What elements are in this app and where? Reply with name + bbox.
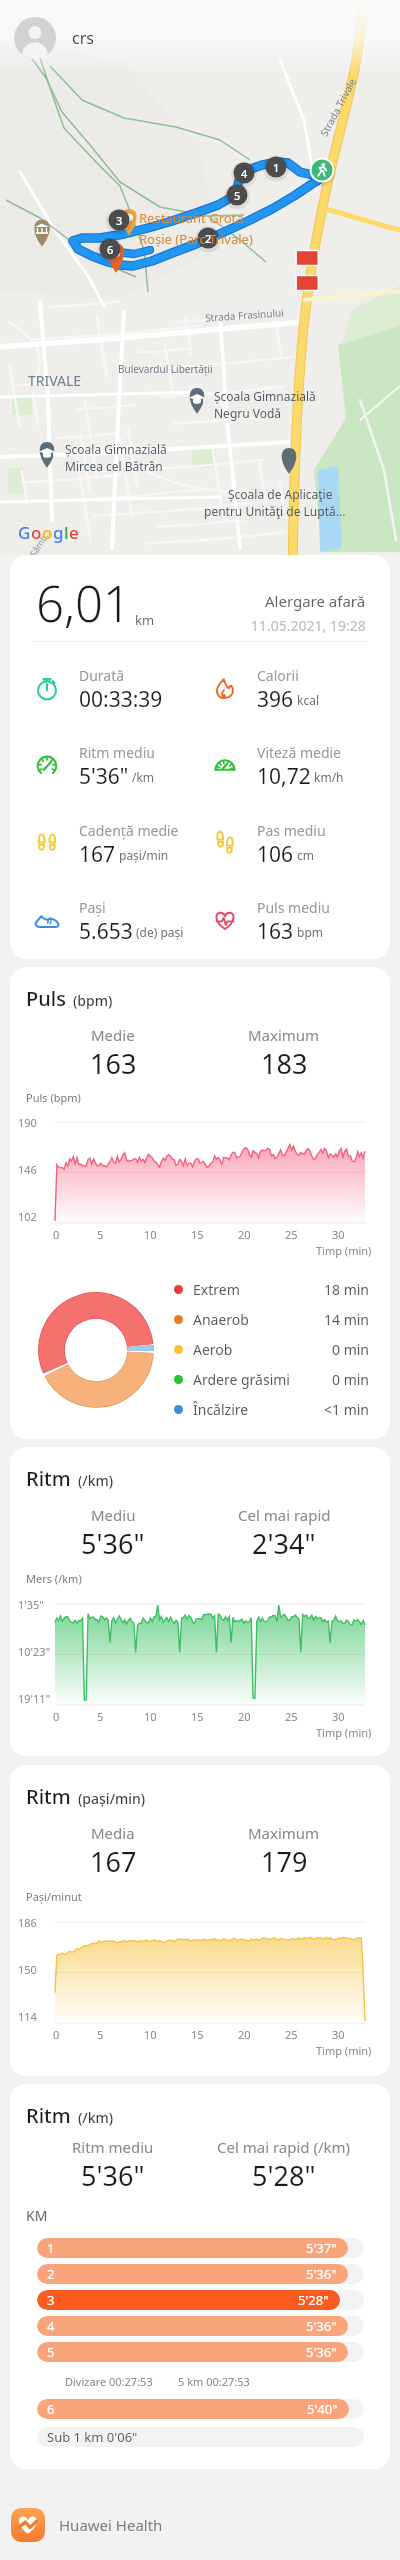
staticText: 396	[257, 685, 294, 710]
button[interactable]: Ritm mediu	[18, 2137, 208, 2194]
button[interactable]: Sub 1 km 0'06"	[37, 2427, 364, 2447]
staticText: (pași/min)	[78, 1789, 146, 1808]
staticText: 0	[53, 1709, 60, 1724]
staticText: 5 km 00:27:53	[178, 2374, 250, 2389]
button[interactable]: Viteză medie	[210, 743, 390, 787]
button[interactable]: Durată	[32, 666, 188, 710]
button[interactable]: Cel mai rapid (/km)	[189, 2137, 379, 2194]
button[interactable]: Aerob	[174, 1334, 370, 1364]
staticText: 1	[273, 160, 280, 175]
staticText: 183	[261, 1045, 308, 1082]
button[interactable]: Anaerob	[174, 1304, 370, 1334]
staticText: 15	[191, 2027, 204, 2042]
button[interactable]: Ardere grăsimi	[174, 1364, 370, 1394]
staticText: Cadență medie	[79, 821, 179, 840]
staticText: Media	[91, 1823, 135, 1843]
button[interactable]: 2	[37, 2264, 364, 2284]
staticText: 11.05.2021, 19:28	[251, 616, 366, 635]
staticText: 5	[97, 1227, 104, 1242]
staticText: km	[135, 611, 155, 629]
staticText: 179	[261, 1843, 308, 1880]
staticText: 5'40"	[307, 2400, 338, 2418]
staticText: 163	[257, 917, 294, 942]
staticText: Viteză medie	[257, 743, 341, 762]
staticText: Ritm	[26, 2102, 71, 2129]
staticText: 0	[53, 1227, 60, 1242]
staticText: <1 min	[324, 1400, 370, 1419]
staticText: 186	[18, 1915, 37, 1929]
staticText: Mers (/km)	[26, 1571, 82, 1586]
staticText: 15	[191, 1709, 204, 1724]
staticText: (bpm)	[73, 991, 113, 1010]
staticText: TRIVALE	[28, 371, 82, 390]
staticText: Ritm	[26, 1783, 71, 1810]
staticText: 15	[191, 1227, 204, 1242]
staticText: 6,01	[36, 570, 131, 637]
staticText: 1	[47, 2239, 55, 2257]
staticText: Încălzire	[193, 1400, 249, 1419]
staticText: Școala Gimnazială	[65, 441, 167, 457]
staticText: Sub 1 km 0'06"	[47, 2428, 138, 2446]
staticText: 10	[144, 2027, 157, 2042]
button[interactable]: 1	[37, 2238, 364, 2258]
staticText: Pași	[79, 898, 106, 917]
staticText: G	[18, 521, 31, 544]
staticText: Școala de Aplicaţie	[228, 486, 333, 502]
button[interactable]: Calorii	[210, 666, 390, 710]
staticText: 6	[107, 242, 114, 257]
staticText: 5'36"	[81, 2157, 145, 2194]
button[interactable]: Extrem	[174, 1274, 370, 1304]
button[interactable]: 5	[37, 2342, 364, 2362]
button[interactable]: Cel mai rapid	[189, 1505, 379, 1562]
staticText: 5	[47, 2343, 55, 2361]
staticText: crs	[72, 27, 94, 49]
staticText: 1'35"	[18, 1597, 44, 1611]
staticText: pentru Unităţi de Luptă...	[204, 503, 346, 519]
button[interactable]: Huawei Health	[11, 2497, 400, 2553]
staticText: 25	[285, 1709, 298, 1724]
staticText: 14 min	[324, 1310, 370, 1329]
staticText: 106	[257, 840, 294, 865]
staticText: Huawei Health	[59, 2515, 163, 2535]
button[interactable]: Mediu	[18, 1505, 208, 1562]
staticText: 5'36"	[81, 1525, 145, 1562]
staticText: 163	[90, 1045, 137, 1082]
staticText: 5'36"	[306, 2265, 337, 2283]
button[interactable]: Medie	[18, 1025, 208, 1082]
staticText: 2	[205, 231, 212, 246]
button[interactable]: Profile	[14, 17, 56, 59]
button[interactable]: Media	[18, 1823, 208, 1880]
staticText: 10	[144, 1709, 157, 1724]
staticText: Anaerob	[193, 1310, 249, 1329]
button[interactable]: 3	[37, 2290, 364, 2310]
button[interactable]: Maximum	[189, 1823, 379, 1880]
staticText: 20	[238, 1709, 251, 1724]
staticText: Școala Gimnazială	[214, 388, 316, 404]
staticText: 10'23"	[18, 1644, 51, 1658]
staticText: Durată	[79, 666, 125, 685]
staticText: Restaurant Grota	[139, 209, 244, 227]
staticText: l	[64, 521, 69, 544]
staticText: 5'28"	[252, 2157, 316, 2194]
staticText: Pas mediu	[257, 821, 326, 840]
staticText: 18 min	[324, 1280, 370, 1299]
staticText: Ardere grăsimi	[193, 1370, 290, 1389]
button[interactable]: Încălzire	[174, 1394, 370, 1424]
button[interactable]: 4	[37, 2316, 364, 2336]
staticText: 5'36"	[306, 2343, 337, 2361]
button[interactable]: Pas mediu	[210, 821, 390, 865]
button[interactable]: Ritm mediu	[32, 743, 188, 787]
staticText: Sâmb...	[26, 525, 53, 559]
staticText: 102	[18, 1209, 37, 1223]
staticText: o	[42, 521, 53, 544]
staticText: Strada Trivale	[317, 75, 359, 139]
staticText: (de) pași	[136, 924, 184, 940]
staticText: 6	[47, 2400, 55, 2418]
button[interactable]: 6	[37, 2399, 364, 2419]
button[interactable]: Maximum	[189, 1025, 379, 1082]
button[interactable]: Pași	[32, 898, 188, 942]
button[interactable]: Puls mediu	[210, 898, 390, 942]
staticText: Timp (min)	[316, 1725, 372, 1740]
staticText: e	[69, 521, 79, 544]
button[interactable]: Cadență medie	[32, 821, 188, 865]
